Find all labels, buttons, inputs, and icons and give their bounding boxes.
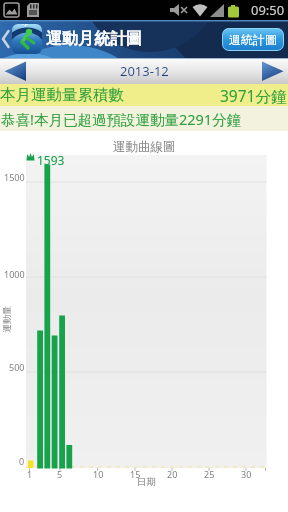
staticText: 3971分鐘 [220,85,287,106]
staticText: 2013-12 [120,62,169,80]
staticText: 日期 [137,476,156,488]
staticText: 25 [204,468,215,480]
staticText: 20 [167,468,178,480]
staticText: 本月運動量累積數 [0,85,124,105]
staticText: 1500 [4,171,25,183]
button[interactable] [258,58,288,84]
staticText: 15 [130,468,141,480]
staticText: 週統計圖 [229,32,277,47]
staticText: 30 [241,468,252,480]
button[interactable] [0,58,30,84]
staticText: 運動月統計圖 [46,29,142,49]
staticText: 1 [27,468,33,480]
staticText: 09:50 [251,1,285,19]
staticText: 1593 [37,152,65,168]
staticText: 1000 [4,268,25,280]
button[interactable]: 本月運動量累積數 [0,84,288,106]
staticText: 10 [93,468,104,480]
staticText: 0 [19,455,25,467]
staticText: 恭喜!本月已超過預設運動量2291分鐘 [1,109,242,129]
button[interactable]: 週統計圖 [222,28,284,51]
staticText: 運動曲線圖 [113,139,176,155]
staticText: 5 [57,468,63,480]
staticText: 運動量 [1,306,12,333]
staticText: 500 [9,361,25,373]
